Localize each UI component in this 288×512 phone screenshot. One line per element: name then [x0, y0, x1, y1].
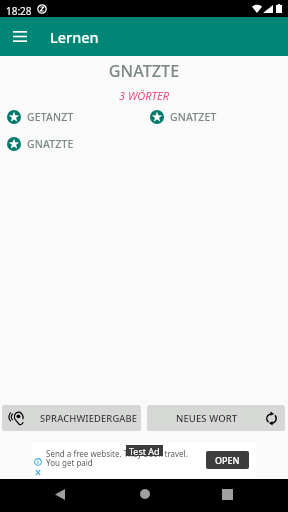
button[interactable]: Menu [7, 23, 33, 49]
staticText: GNATZET [170, 110, 217, 124]
staticText: SPRACHWIEDERGABE [40, 412, 138, 425]
staticText: 18:28 [6, 4, 32, 18]
button[interactable]: Back [45, 479, 288, 512]
staticText: 3 WÖRTER [0, 88, 288, 103]
button[interactable]: GNATZET [150, 109, 217, 125]
staticText: GNATZTE [27, 137, 74, 151]
staticText: OPEN [215, 454, 240, 466]
button[interactable]: OPEN [206, 451, 249, 469]
button[interactable]: Send a free website. They book travel. [32, 443, 256, 478]
staticText: Send a free website. They book travel. [46, 448, 188, 459]
button[interactable]: NEUES WORT [147, 405, 285, 431]
button[interactable]: SPRACHWIEDERGABE [2, 405, 141, 431]
button[interactable]: GETANZT [7, 109, 74, 125]
staticText: GNATZTE [0, 60, 288, 82]
staticText: Test Ad [129, 445, 160, 456]
staticText: You get paid [46, 457, 93, 468]
staticText: Lernen [50, 27, 99, 47]
button[interactable]: GNATZTE [7, 136, 74, 152]
staticText: GETANZT [27, 110, 74, 124]
staticText: NEUES WORT [176, 412, 238, 425]
